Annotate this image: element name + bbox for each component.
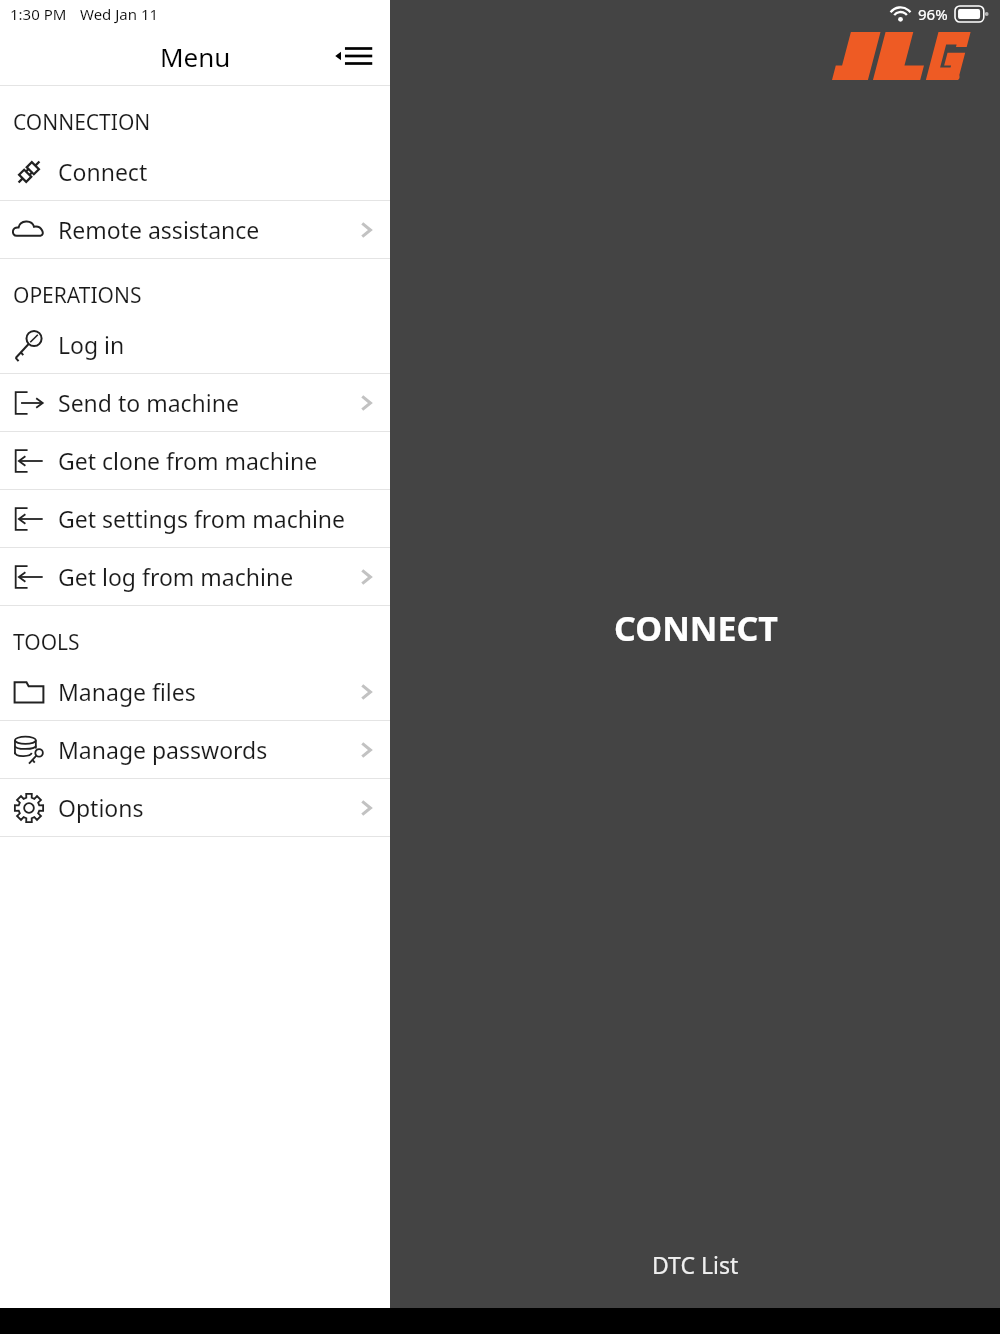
button[interactable]: Close menu [326, 34, 378, 78]
staticText: Wed Jan 11 [80, 4, 159, 24]
staticText: Menu [160, 39, 231, 74]
button[interactable]: DTC List [652, 1249, 739, 1280]
staticText: CONNECT [614, 605, 778, 651]
button[interactable]: Connect [0, 143, 390, 200]
staticText: Manage files [58, 676, 196, 707]
staticText: Log in [58, 329, 125, 360]
staticText: Get clone from machine [58, 445, 318, 476]
button[interactable]: Get clone from machine [0, 432, 390, 489]
button[interactable]: Send to machine [0, 374, 390, 431]
staticText: DTC List [652, 1249, 739, 1280]
staticText: 96% [918, 4, 948, 24]
button[interactable]: Log in [0, 316, 390, 373]
button[interactable]: Options [0, 779, 390, 836]
button[interactable]: Get log from machine [0, 548, 390, 605]
staticText: CONNECTION [13, 108, 151, 137]
staticText: Get settings from machine [58, 503, 346, 534]
staticText: Get log from machine [58, 561, 294, 592]
staticText: TOOLS [13, 628, 80, 657]
staticText: Manage passwords [58, 734, 268, 765]
staticText: Options [58, 792, 144, 823]
staticText: Remote assistance [58, 214, 260, 245]
button[interactable]: Manage passwords [0, 721, 390, 778]
button[interactable]: Get settings from machine [0, 490, 390, 547]
button[interactable]: Manage files [0, 663, 390, 720]
staticText: 1:30 PM [10, 4, 67, 24]
staticText: OPERATIONS [13, 281, 142, 310]
button[interactable]: Remote assistance [0, 201, 390, 258]
staticText: Send to machine [58, 387, 239, 418]
staticText: Connect [58, 156, 148, 187]
